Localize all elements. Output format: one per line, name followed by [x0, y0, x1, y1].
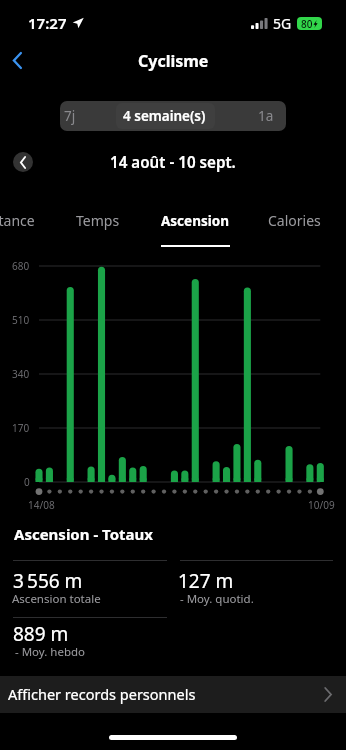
staticText: Ascension	[161, 212, 229, 230]
staticText: Ascension - Totaux	[14, 524, 153, 544]
button[interactable]: 7j	[41, 101, 98, 131]
button[interactable]: Back	[3, 46, 31, 74]
staticText: Afficher records personnels	[8, 684, 196, 704]
staticText: 4 semaine(s)	[123, 107, 206, 125]
button[interactable]: Calories	[248, 206, 340, 246]
staticText: 14 août - 10 sept.	[110, 152, 236, 173]
staticText: Calories	[268, 211, 321, 230]
staticText: 1a	[258, 107, 274, 125]
staticText: 510	[12, 313, 30, 327]
button[interactable]: Temps	[52, 206, 144, 246]
button[interactable]: Afficher records personnels	[0, 676, 346, 713]
staticText: 7j	[64, 107, 76, 125]
staticText: Cyclisme	[138, 50, 209, 72]
button[interactable]: Ascension	[149, 206, 241, 246]
staticText: Distance	[0, 211, 35, 230]
staticText: 14/08	[28, 498, 55, 512]
staticText: 340	[12, 367, 30, 381]
button[interactable]: Distance	[0, 206, 52, 246]
staticText: Temps	[76, 211, 120, 230]
staticText: 170	[12, 421, 30, 435]
staticText: 0	[24, 475, 30, 489]
staticText: 889 m	[13, 621, 69, 647]
staticText: 3 556 m	[13, 568, 83, 594]
button[interactable]: Previous period	[13, 152, 33, 172]
staticText: 127 m	[178, 568, 234, 594]
staticText: Ascension totale	[12, 591, 101, 607]
staticText: 17:27	[28, 13, 67, 33]
button[interactable]: 4 semaine(s)	[115, 101, 214, 131]
staticText: - Moy. quotid.	[177, 591, 254, 607]
staticText: 5G	[273, 14, 292, 33]
staticText: 10/09	[308, 498, 335, 512]
staticText: 80	[301, 17, 313, 30]
staticText: - Moy. hebdo	[12, 644, 86, 660]
staticText: 680	[12, 259, 30, 273]
button[interactable]: 1a	[231, 101, 301, 131]
